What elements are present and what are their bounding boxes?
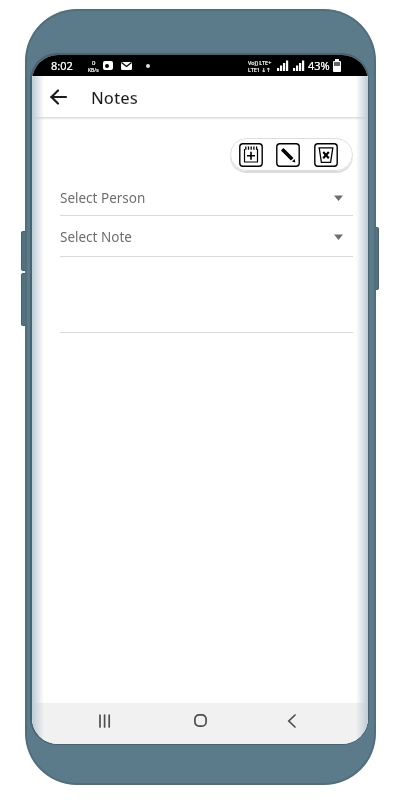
button[interactable] xyxy=(89,703,121,744)
staticText: LTE1 ↓↑ xyxy=(248,66,271,73)
staticText: KB/s xyxy=(88,67,99,74)
staticText: 8:02 xyxy=(51,58,73,73)
button[interactable] xyxy=(275,703,307,744)
staticText: Notes xyxy=(91,86,138,108)
button[interactable]: Select Note xyxy=(60,222,353,252)
button[interactable] xyxy=(44,76,74,117)
staticText: 0 xyxy=(92,59,96,67)
button[interactable]: Select Person xyxy=(60,183,353,213)
button[interactable] xyxy=(239,143,263,167)
staticText: 43% xyxy=(308,58,330,73)
staticText: Vo)) LTE+ xyxy=(248,59,272,66)
button[interactable] xyxy=(314,143,338,167)
button[interactable] xyxy=(276,143,300,167)
button[interactable] xyxy=(181,703,219,744)
staticText: Select Note xyxy=(60,228,132,246)
staticText: Select Person xyxy=(60,189,146,207)
